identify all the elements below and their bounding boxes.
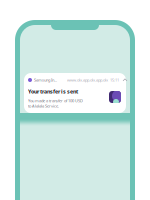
staticText: Samsung In... — [34, 77, 57, 83]
staticText: 15:11 — [110, 77, 119, 83]
button[interactable]: Samsung In... — [24, 73, 126, 113]
staticText: to Alalala Service. — [28, 103, 59, 109]
staticText: www.olx.app.olx.app.olx — [67, 77, 108, 83]
staticText: You made a transfer of 100 USD — [28, 98, 83, 103]
staticText: Your transfer is sent — [28, 88, 78, 95]
